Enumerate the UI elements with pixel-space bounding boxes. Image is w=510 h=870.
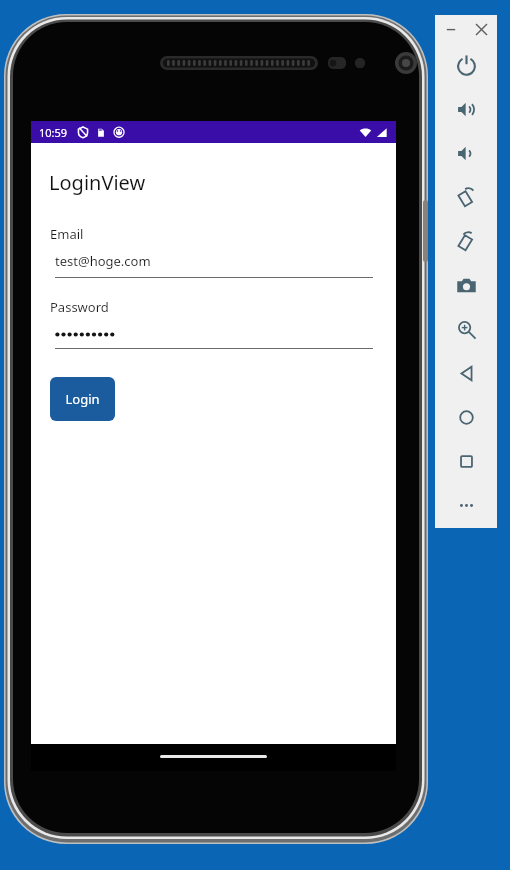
button[interactable]: Take screenshot — [435, 263, 497, 307]
button[interactable]: More — [435, 483, 497, 527]
staticText: Password — [50, 298, 109, 316]
button[interactable]: Home — [435, 395, 497, 439]
button[interactable]: Overview — [435, 439, 497, 483]
button[interactable]: test@hoge.com — [55, 252, 373, 278]
staticText: LoginView — [49, 169, 146, 196]
staticText: Email — [50, 225, 84, 243]
staticText: Login — [65, 390, 100, 408]
button[interactable]: Minimize — [441, 19, 461, 39]
button[interactable] — [55, 325, 373, 349]
button[interactable]: Rotate right — [435, 219, 497, 263]
button[interactable]: Login — [50, 377, 115, 421]
button[interactable]: Volume up — [435, 87, 497, 131]
button[interactable]: Rotate left — [435, 175, 497, 219]
button[interactable]: Back — [435, 351, 497, 395]
button[interactable]: Power — [435, 43, 497, 87]
button[interactable]: Close — [471, 19, 491, 39]
staticText: test@hoge.com — [55, 252, 151, 270]
staticText: 10:59 — [39, 125, 68, 140]
button[interactable]: Zoom — [435, 307, 497, 351]
button[interactable]: Volume down — [435, 131, 497, 175]
